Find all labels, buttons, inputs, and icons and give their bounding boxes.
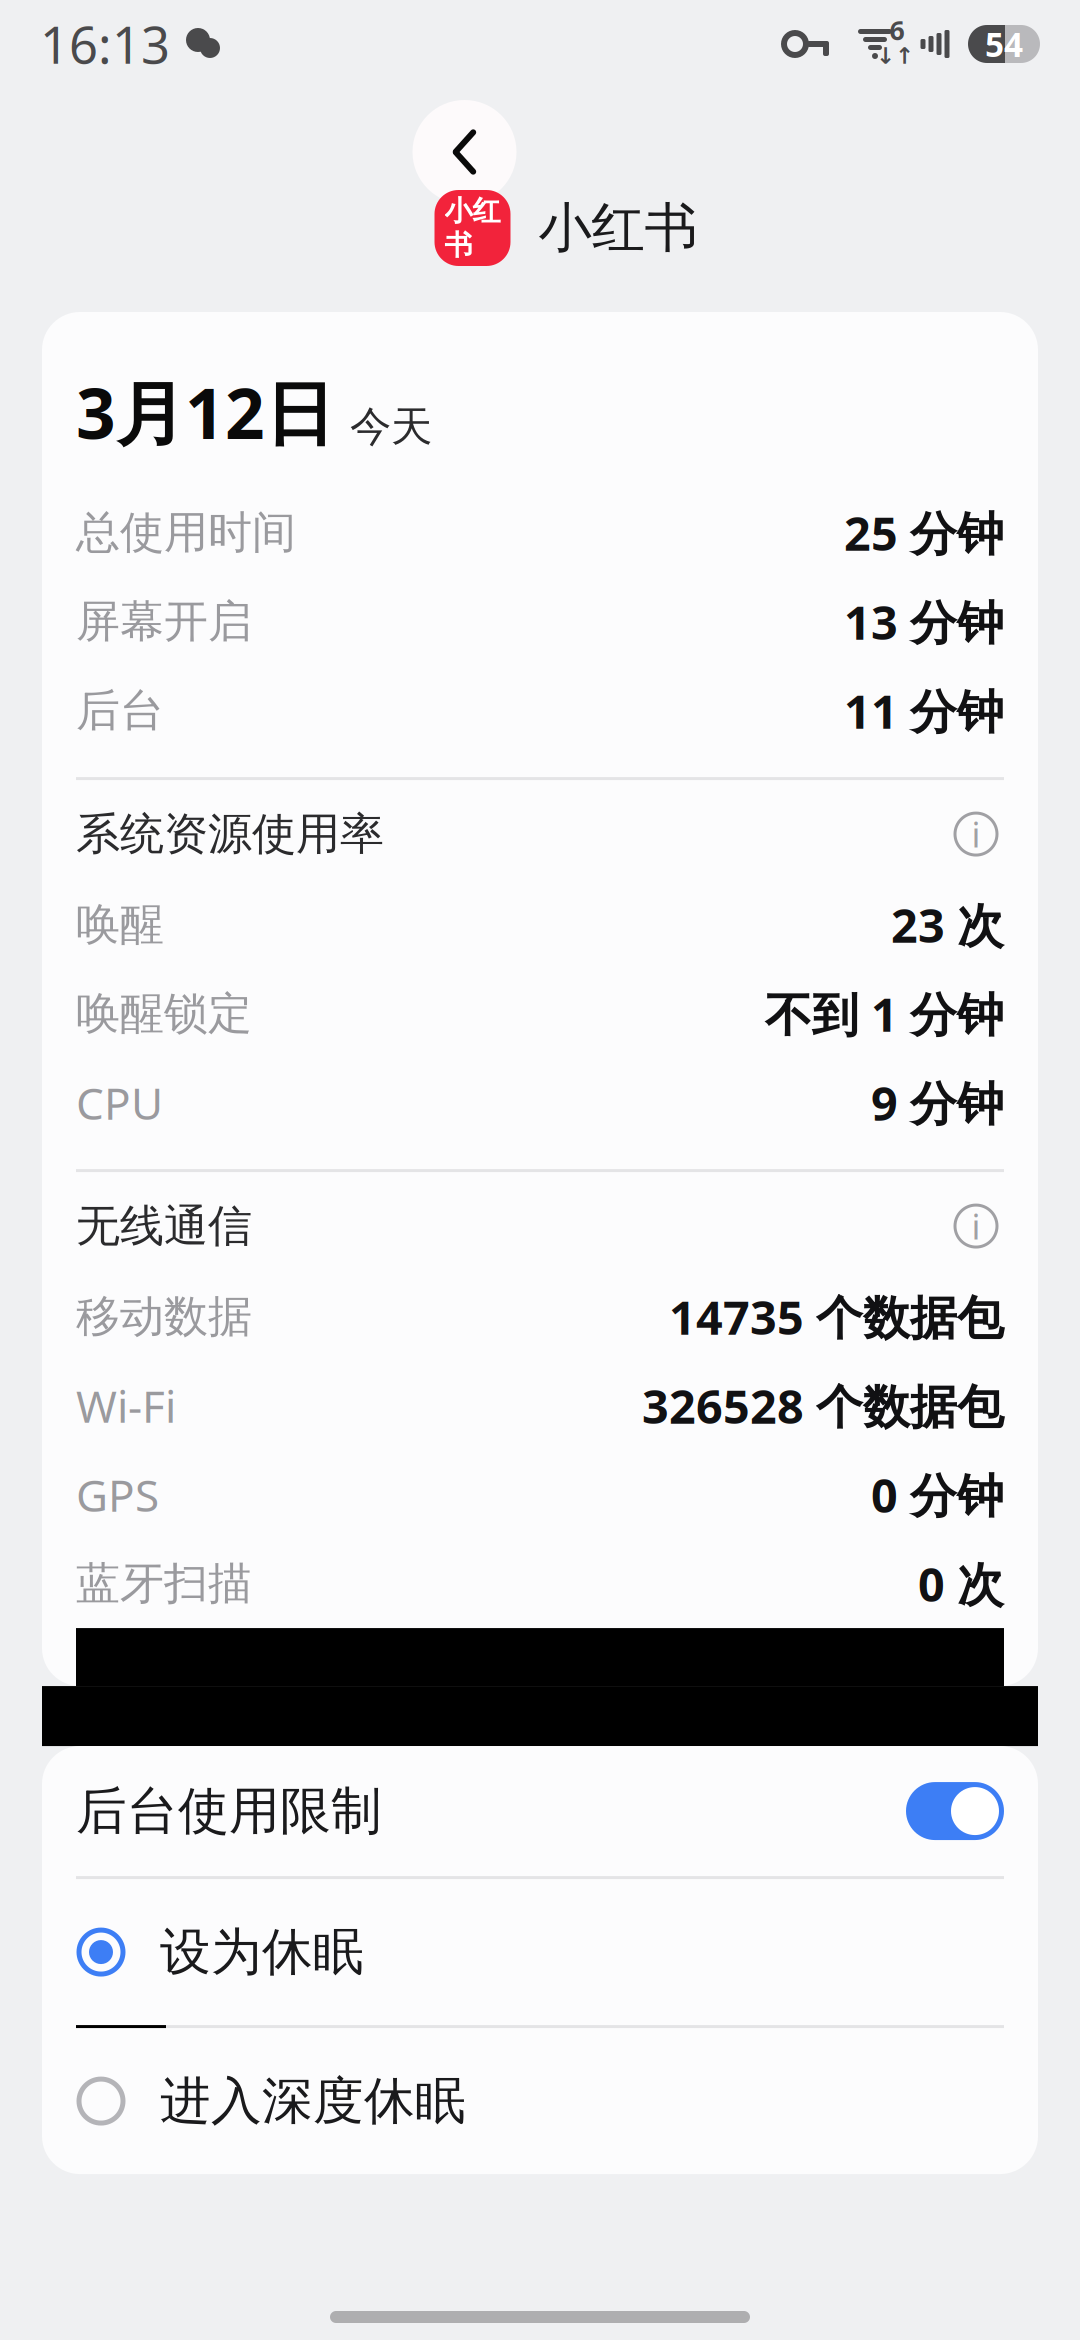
button[interactable]: 进入深度休眠 — [42, 2028, 1038, 2174]
staticText: 23 次 — [891, 894, 1004, 956]
staticText: 小红书 — [538, 195, 697, 261]
staticText: 不到 1 分钟 — [765, 983, 1004, 1045]
staticText: 6 — [889, 12, 904, 48]
staticText: i — [971, 1203, 980, 1249]
staticText: 蓝牙扫描 — [76, 1556, 252, 1610]
staticText: 14735 个数据包 — [669, 1286, 1004, 1348]
staticText: 总使用时间 — [76, 505, 296, 559]
staticText: 54 — [985, 22, 1023, 66]
staticText: Wi-Fi — [76, 1376, 176, 1435]
button[interactable]: 后台使用限制 — [42, 1746, 1038, 1876]
staticText: 今天 — [350, 401, 432, 452]
staticText: CPU — [76, 1073, 163, 1132]
staticText: 326528 个数据包 — [642, 1375, 1004, 1437]
staticText: 后台 — [76, 683, 164, 737]
staticText: 唤醒 — [76, 897, 164, 951]
staticText: ↓↑ — [876, 43, 914, 69]
staticText: 系统资源使用率 — [76, 807, 384, 861]
staticText: 13 分钟 — [844, 591, 1004, 653]
staticText: 设为休眠 — [160, 1921, 364, 1983]
staticText: 进入深度休眠 — [160, 2070, 466, 2132]
staticText: GPS — [76, 1465, 159, 1524]
staticText: 3月12日 — [76, 366, 334, 458]
staticText: 屏幕开启 — [76, 594, 252, 648]
staticText: i — [971, 811, 980, 857]
button[interactable]: 说明 — [948, 806, 1004, 862]
staticText: 11 分钟 — [844, 680, 1004, 742]
staticText: 小红书 — [444, 194, 500, 262]
button[interactable]: 返回 — [412, 100, 516, 204]
staticText: 0 分钟 — [871, 1464, 1004, 1526]
staticText: 0 次 — [918, 1553, 1004, 1615]
button[interactable]: 说明 — [948, 1198, 1004, 1254]
staticText: 16:13 — [40, 10, 170, 78]
staticText: 后台使用限制 — [76, 1780, 382, 1842]
button[interactable]: 设为休眠 — [42, 1879, 1038, 2025]
staticText: 9 分钟 — [871, 1072, 1004, 1134]
staticText: 移动数据 — [76, 1289, 252, 1343]
staticText: 唤醒锁定 — [76, 986, 252, 1040]
staticText: 无线通信 — [76, 1199, 252, 1253]
staticText: 25 分钟 — [844, 502, 1004, 564]
